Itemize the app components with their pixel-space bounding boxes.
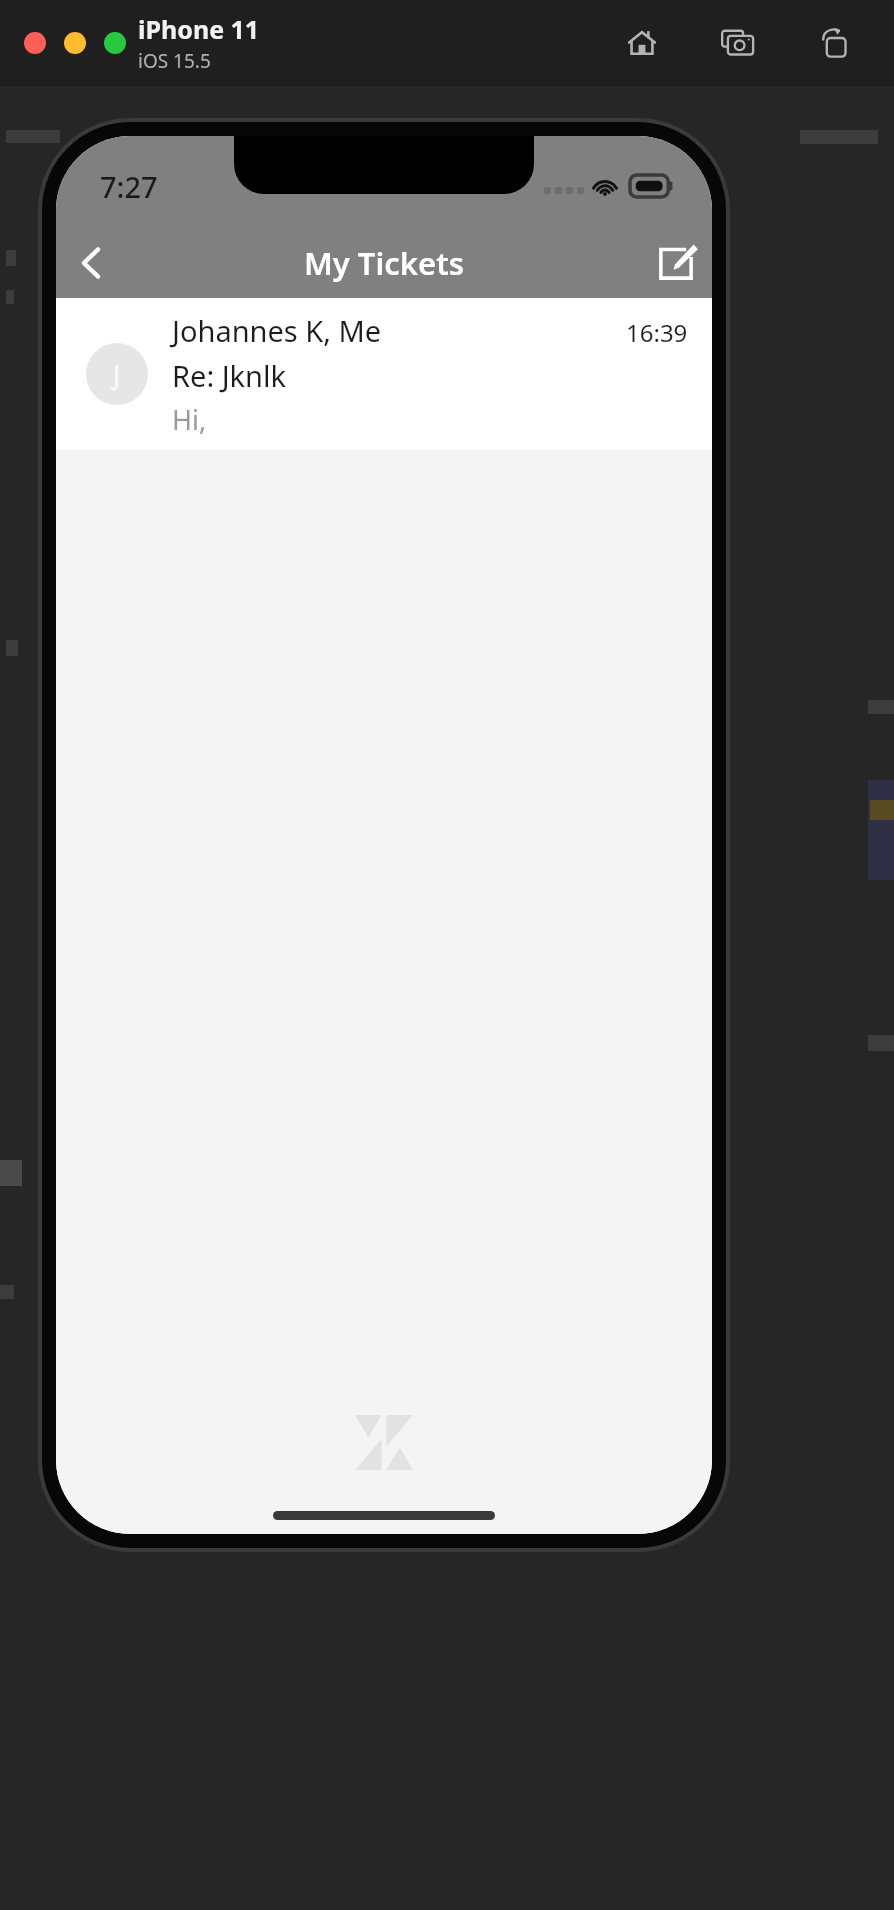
button[interactable]: J: [56, 298, 712, 450]
button[interactable]: New ticket: [640, 228, 712, 298]
staticText: Johannes K, Me: [172, 311, 382, 350]
staticText: My Tickets: [304, 242, 465, 284]
button[interactable]: Rotate device: [812, 21, 856, 65]
staticText: 7:27: [100, 167, 158, 206]
button[interactable]: Back: [56, 228, 128, 298]
button[interactable]: [24, 32, 46, 54]
button[interactable]: [104, 32, 126, 54]
staticText: 16:39: [626, 316, 688, 349]
staticText: iOS 15.5: [138, 48, 211, 74]
staticText: J: [113, 356, 121, 393]
staticText: iPhone 11: [138, 12, 260, 46]
staticText: Hi,: [172, 401, 207, 438]
button[interactable]: [64, 32, 86, 54]
button[interactable]: Screenshot: [716, 21, 760, 65]
staticText: Re: Jknlk: [172, 356, 286, 395]
button[interactable]: Home: [620, 21, 664, 65]
